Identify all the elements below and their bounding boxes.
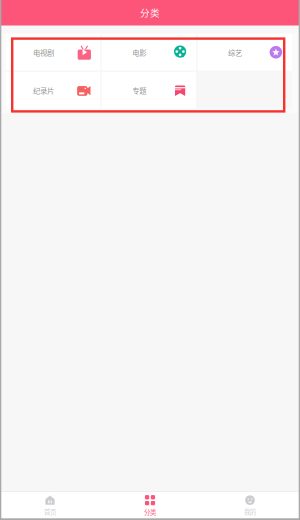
- button[interactable]: 我的: [200, 492, 300, 519]
- button[interactable]: 首页: [0, 492, 100, 519]
- button[interactable]: 电视剧: [6, 34, 100, 70]
- staticText: 专题: [132, 85, 146, 96]
- staticText: 电影: [132, 47, 146, 57]
- staticText: 综艺: [228, 47, 242, 57]
- staticText: 纪录片: [33, 85, 54, 96]
- button[interactable]: 纪录片: [6, 72, 100, 109]
- staticText: 首页: [44, 507, 56, 516]
- button[interactable]: 综艺: [198, 34, 292, 70]
- staticText: 我的: [244, 507, 256, 516]
- button[interactable]: 专题: [102, 72, 196, 109]
- staticText: 分类: [140, 5, 160, 19]
- button[interactable]: 分类: [100, 492, 200, 519]
- staticText: 电视剧: [33, 47, 54, 57]
- staticText: 分类: [144, 507, 156, 517]
- button[interactable]: 电影: [102, 34, 196, 70]
